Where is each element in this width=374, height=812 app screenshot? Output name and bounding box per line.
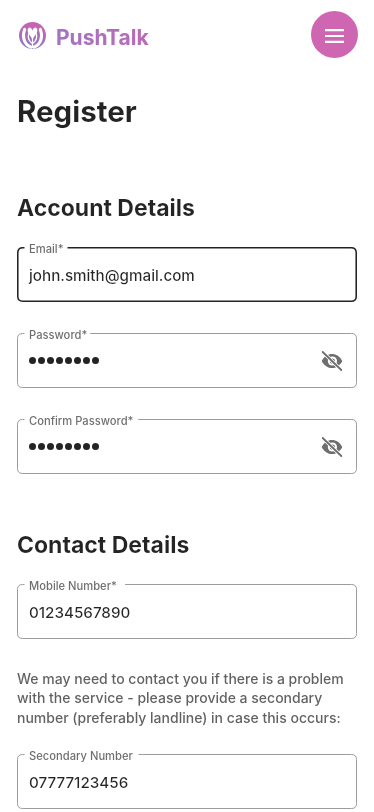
button[interactable]: Show password (319, 348, 345, 374)
staticText: We may need to contact you if there is a… (17, 670, 357, 726)
button[interactable]: Mobile Number* (17, 584, 357, 639)
staticText: 07777123456 (29, 773, 129, 791)
staticText: Password* (29, 328, 88, 342)
staticText: Register (17, 93, 137, 129)
staticText: Account Details (17, 194, 195, 222)
button[interactable]: Menu (311, 11, 358, 58)
staticText: Contact Details (17, 531, 190, 559)
staticText: PushTalk (56, 25, 149, 50)
staticText: 01234567890 (29, 603, 131, 621)
staticText: Mobile Number* (29, 579, 117, 593)
staticText: Secondary Number (29, 749, 133, 763)
button[interactable]: Confirm Password* (17, 419, 357, 474)
staticText: Confirm Password* (29, 414, 134, 428)
staticText: john.smith@gmail.com (29, 266, 195, 284)
button[interactable]: Show password (319, 434, 345, 460)
staticText: Email* (29, 242, 64, 256)
button[interactable]: Email* (17, 247, 357, 302)
button[interactable]: Secondary Number (17, 754, 357, 809)
button[interactable]: Password* (17, 333, 357, 388)
